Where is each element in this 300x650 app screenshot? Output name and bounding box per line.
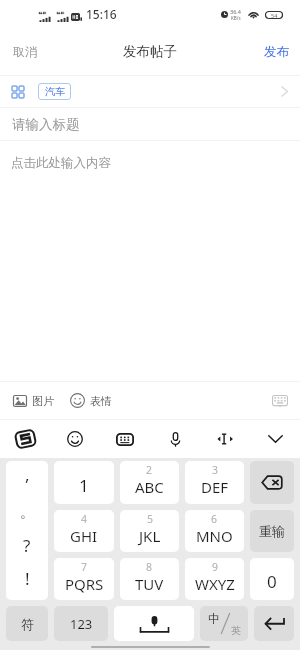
staticText: MNO xyxy=(196,526,233,546)
button[interactable]: Emoji xyxy=(50,420,100,458)
other: Enter xyxy=(264,617,285,630)
staticText: PQRS xyxy=(65,574,104,594)
button[interactable]: Enter xyxy=(254,606,294,641)
staticText: DEF xyxy=(201,477,229,497)
staticText: 3 xyxy=(212,463,219,477)
staticText: 6 xyxy=(211,512,218,526)
staticText: 4 xyxy=(81,512,88,526)
staticText: ? xyxy=(23,534,31,557)
staticText: 汽车 xyxy=(45,85,65,98)
staticText: 请输入标题 xyxy=(12,116,80,133)
staticText: 0 xyxy=(267,570,277,593)
button[interactable]: Hide keyboard xyxy=(250,420,300,458)
button[interactable]: 0 xyxy=(250,558,294,600)
staticText: 2 xyxy=(146,463,153,477)
staticText: 图片 xyxy=(32,394,54,408)
staticText: 中 xyxy=(208,611,220,626)
staticText: 8 xyxy=(146,560,153,574)
button[interactable]: 中 xyxy=(200,606,248,641)
button[interactable]: 表情 xyxy=(70,393,112,408)
button[interactable]: Voice input xyxy=(150,420,200,458)
staticText: 7 xyxy=(81,560,88,574)
button[interactable]: 9 xyxy=(185,558,244,600)
staticText: 发布 xyxy=(264,44,289,60)
button[interactable]: Keyboard layout xyxy=(100,420,150,458)
button[interactable]: 7 xyxy=(54,558,114,600)
button[interactable]: 符 xyxy=(6,606,48,641)
staticText: 123 xyxy=(70,615,93,633)
staticText: GHI xyxy=(70,526,98,546)
button[interactable]: 8 xyxy=(120,558,179,600)
button[interactable]: 1 xyxy=(54,461,114,504)
button[interactable]: 4 xyxy=(54,510,114,552)
button[interactable]: Move cursor xyxy=(200,420,250,458)
button[interactable]: 点击此处输入内容 xyxy=(0,141,300,381)
staticText: 1 xyxy=(79,474,89,497)
staticText: 英 xyxy=(231,624,241,637)
button[interactable]: , xyxy=(6,461,48,600)
other: Delete xyxy=(261,475,283,490)
staticText: ! xyxy=(25,567,30,590)
button[interactable]: 取消 xyxy=(0,32,50,71)
staticText: ABC xyxy=(135,477,164,497)
staticText: 5 xyxy=(147,512,154,526)
button[interactable]: Space / voice input xyxy=(114,606,194,641)
staticText: 发布帖子 xyxy=(123,43,177,60)
staticText: 15:16 xyxy=(86,6,117,22)
staticText: 。 xyxy=(20,504,34,522)
staticText: 36.4 xyxy=(230,8,241,15)
staticText: 取消 xyxy=(13,44,37,59)
button[interactable]: 5 xyxy=(120,510,179,552)
button[interactable]: 图片 xyxy=(13,394,54,408)
button[interactable]: 3 xyxy=(185,461,244,504)
staticText: 54 xyxy=(271,12,278,19)
staticText: 符 xyxy=(21,616,34,632)
other: Space / voice input xyxy=(114,606,194,641)
staticText: KB/s xyxy=(231,15,241,21)
button[interactable]: 123 xyxy=(54,606,108,641)
button[interactable]: 重输 xyxy=(250,510,294,552)
staticText: TUV xyxy=(135,574,164,594)
staticText: 点击此处输入内容 xyxy=(11,155,111,171)
button[interactable]: 发布 xyxy=(253,32,300,72)
button[interactable]: 2 xyxy=(120,461,179,504)
staticText: 表情 xyxy=(90,394,112,408)
button[interactable]: 6 xyxy=(185,510,244,552)
staticText: , xyxy=(25,463,30,486)
button[interactable]: 请输入标题 xyxy=(0,108,300,140)
button[interactable]: Delete xyxy=(250,461,294,504)
staticText: 重输 xyxy=(259,523,285,539)
button[interactable]: Sogou input xyxy=(0,420,50,458)
staticText: 9 xyxy=(212,560,219,574)
button[interactable]: Hide keyboard xyxy=(268,391,292,411)
staticText: JKL xyxy=(139,526,161,546)
button[interactable]: 汽车 xyxy=(0,76,300,107)
staticText: WXYZ xyxy=(195,574,235,594)
